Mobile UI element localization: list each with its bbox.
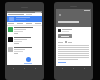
button[interactable]: Add [26, 57, 31, 62]
button[interactable] [7, 46, 42, 56]
button[interactable] [58, 34, 72, 38]
button[interactable] [7, 13, 42, 16]
button[interactable] [7, 26, 42, 36]
button[interactable] [7, 36, 42, 46]
